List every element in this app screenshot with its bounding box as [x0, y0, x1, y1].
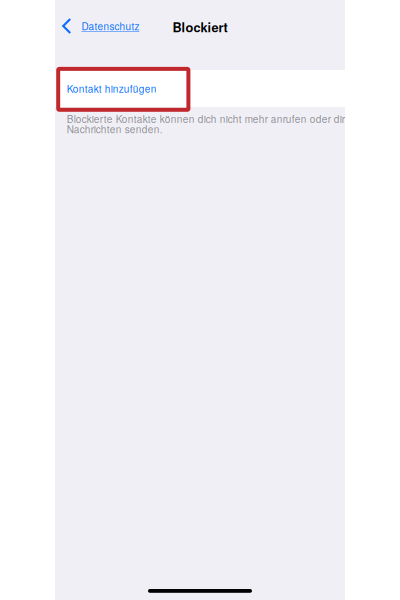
- staticText: Kontakt hinzufügen: [67, 81, 157, 96]
- button[interactable]: Kontakt hinzufügen: [55, 70, 345, 107]
- staticText: Nachrichten senden.: [67, 122, 163, 136]
- staticText: Blockierte Kontakte können dich nicht me…: [67, 111, 345, 126]
- staticText: Datenschutz: [81, 19, 139, 33]
- button[interactable]: Datenschutz: [55, 12, 174, 40]
- staticText: Blockiert: [172, 18, 227, 36]
